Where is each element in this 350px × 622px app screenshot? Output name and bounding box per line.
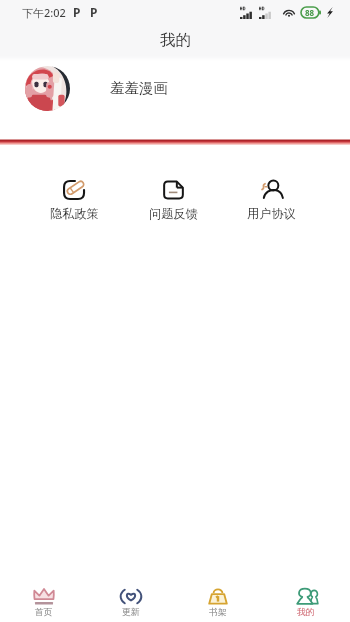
other: Privacy policy [63, 180, 86, 200]
staticText: 用户协议 [247, 206, 296, 221]
button[interactable]: Privacy policy [25, 180, 124, 221]
button[interactable]: Feedback [124, 180, 222, 221]
staticText: P [73, 4, 81, 20]
staticText: 书架 [209, 607, 227, 618]
staticText: 问题反馈 [149, 206, 198, 221]
staticText: 88 [305, 7, 315, 18]
staticText: 首页 [35, 607, 53, 618]
staticText: 我的 [160, 30, 191, 50]
button[interactable]: Home [0, 584, 87, 622]
other: Home [33, 588, 55, 605]
other: User agreement [260, 180, 283, 200]
other: Updates [120, 588, 142, 605]
button[interactable]: Profile [0, 63, 350, 113]
staticText: 我的 [297, 607, 315, 618]
other: Bookshelf [207, 588, 229, 605]
button[interactable]: Bookshelf [174, 584, 262, 622]
staticText: 下午2:02 [22, 5, 66, 20]
button[interactable]: User agreement [222, 180, 320, 221]
button[interactable]: Updates [87, 584, 174, 622]
staticText: 羞羞漫画 [110, 79, 168, 97]
staticText: 更新 [122, 607, 140, 618]
staticText: P [90, 4, 98, 20]
other: Feedback [162, 180, 185, 200]
staticText: 隐私政策 [50, 206, 99, 221]
button[interactable]: Mine [262, 584, 350, 622]
other: Mine [295, 588, 317, 605]
